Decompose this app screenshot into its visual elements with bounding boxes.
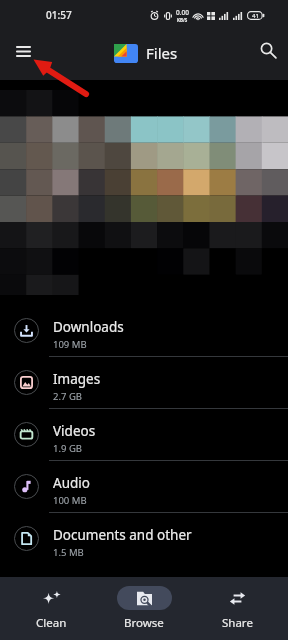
- button[interactable]: Search: [254, 36, 282, 64]
- button[interactable]: Browse: [102, 577, 186, 640]
- staticText: Downloads: [53, 318, 124, 336]
- button[interactable]: Downloads: [0, 305, 288, 356]
- staticText: 1.9 GB: [53, 442, 82, 455]
- button[interactable]: Videos: [0, 409, 288, 460]
- staticText: Files: [146, 43, 178, 63]
- button[interactable]: Open navigation menu: [8, 36, 38, 66]
- button[interactable]: Images: [0, 357, 288, 408]
- staticText: KB/S: [177, 17, 188, 23]
- staticText: 1.5 MB: [53, 546, 84, 559]
- staticText: Clean: [36, 615, 67, 631]
- staticText: Share: [222, 615, 253, 631]
- button[interactable]: Audio: [0, 461, 288, 512]
- staticText: 2.7 GB: [53, 390, 82, 403]
- staticText: 109 MB: [53, 338, 87, 351]
- button[interactable]: Clean: [9, 577, 93, 640]
- button[interactable]: Documents and other: [0, 513, 288, 564]
- staticText: 01:57: [46, 8, 72, 22]
- staticText: Documents and other: [53, 526, 192, 544]
- staticText: Browse: [124, 615, 164, 631]
- button[interactable]: Share: [195, 577, 279, 640]
- staticText: 100 MB: [53, 494, 87, 507]
- staticText: 41: [252, 12, 259, 20]
- staticText: Videos: [53, 422, 96, 440]
- staticText: 0.00: [176, 8, 189, 17]
- staticText: Images: [53, 370, 101, 388]
- staticText: Audio: [53, 474, 90, 492]
